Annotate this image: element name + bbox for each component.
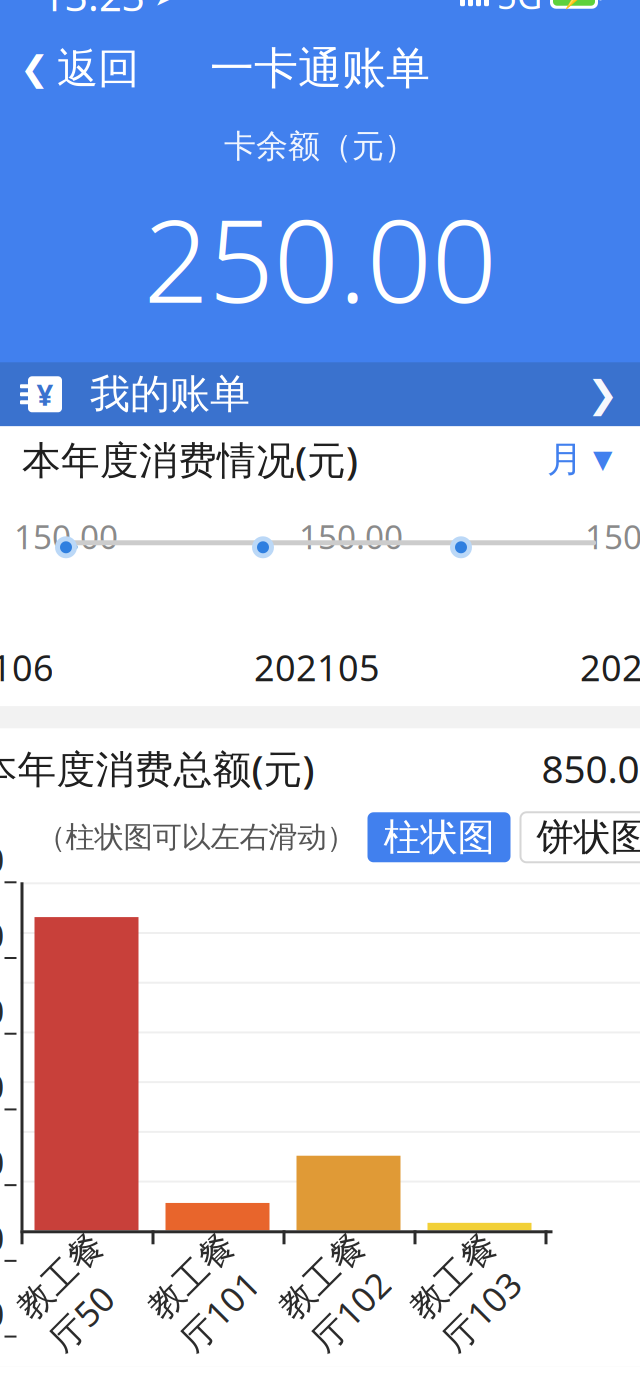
staticText: 柱状图: [383, 814, 494, 860]
button[interactable]: 饼状图: [520, 812, 640, 862]
staticText: 202106: [0, 643, 54, 691]
staticText: 250.00: [143, 182, 496, 334]
staticText: 本年度消费情况(元): [22, 434, 358, 485]
staticText: 5G: [497, 0, 542, 19]
staticText: 150.00: [299, 514, 403, 559]
staticText: 202105: [254, 643, 380, 691]
button[interactable]: 月: [541, 435, 618, 483]
staticText: 教工餐厅103: [417, 1248, 522, 1337]
staticText: ▼: [593, 445, 612, 474]
button[interactable]: ¥: [0, 362, 640, 426]
staticText: 202104: [580, 643, 640, 691]
staticText: 100: [0, 1290, 4, 1383]
staticText: 一卡通账单: [210, 42, 430, 96]
staticText: 教工餐厅101: [155, 1248, 260, 1337]
staticText: 饼状图: [536, 814, 640, 860]
staticText: ➤: [154, 0, 177, 12]
staticText: 850.00: [541, 743, 640, 794]
staticText: ¥: [36, 375, 53, 414]
staticText: 600: [0, 912, 4, 1004]
staticText: ⚡: [559, 0, 589, 9]
staticText: 我的账单: [90, 370, 250, 419]
staticText: 200: [0, 1215, 4, 1307]
staticText: 教工餐厅50: [24, 1248, 129, 1337]
staticText: 700: [0, 836, 4, 928]
staticText: 400: [0, 1063, 4, 1155]
staticText: 月: [547, 437, 583, 481]
staticText: （柱状图可以左右滑动）: [36, 819, 355, 855]
staticText: ❮: [20, 49, 49, 88]
staticText: 150.00: [585, 514, 640, 559]
staticText: 150.00: [14, 514, 118, 559]
button[interactable]: ❮: [0, 38, 159, 100]
button[interactable]: 柱状图: [367, 812, 510, 862]
staticText: 返回: [57, 43, 139, 94]
staticText: 500: [0, 988, 4, 1080]
staticText: 卡余额（元）: [224, 127, 416, 166]
staticText: ❯: [587, 373, 618, 415]
staticText: 300: [0, 1139, 4, 1231]
staticText: 13:23: [42, 0, 145, 22]
staticText: 教工餐厅102: [286, 1248, 391, 1337]
staticText: 本年度消费总额(元): [0, 743, 314, 794]
